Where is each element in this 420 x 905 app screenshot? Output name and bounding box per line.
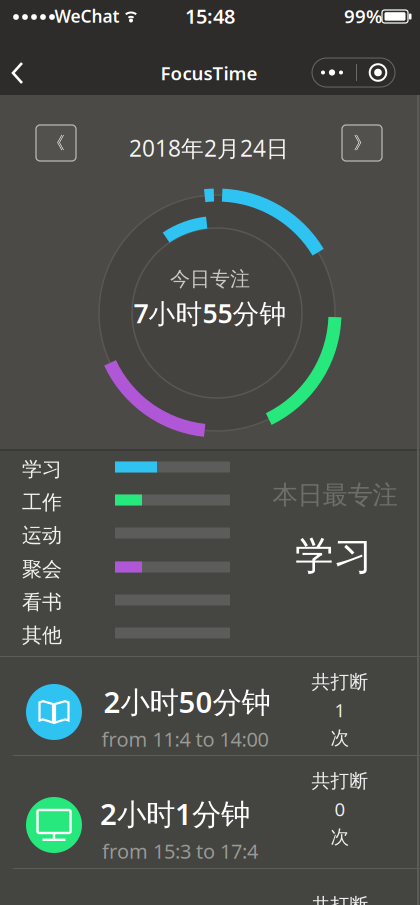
- staticText: 本日最专注: [272, 479, 397, 510]
- staticText: WeChat: [54, 4, 119, 27]
- staticText: 今日专注: [170, 267, 250, 291]
- staticText: 1: [334, 698, 345, 722]
- staticText: 聚会: [22, 557, 62, 582]
- staticText: 0: [334, 797, 345, 821]
- button[interactable]: 2小时50分钟: [0, 657, 420, 755]
- staticText: 99%: [344, 4, 382, 28]
- staticText: 共打断: [311, 769, 368, 792]
- staticText: from 11:4 to 14:00: [101, 726, 268, 752]
- staticText: 学习: [22, 457, 62, 482]
- staticText: 《: [47, 132, 64, 154]
- button[interactable]: More: [312, 58, 356, 87]
- staticText: 次: [330, 825, 349, 848]
- staticText: 学习: [295, 532, 373, 580]
- staticText: 次: [330, 726, 349, 749]
- staticText: 共打断: [311, 670, 368, 693]
- staticText: 共打断: [311, 893, 368, 905]
- button[interactable]: Previous day: [36, 125, 76, 161]
- staticText: 运动: [22, 523, 62, 548]
- staticText: 其他: [22, 623, 62, 648]
- button[interactable]: Next day: [342, 125, 382, 161]
- button[interactable]: 共打断: [0, 869, 420, 905]
- staticText: 15:48: [185, 3, 235, 29]
- staticText: 2018年2月24日: [129, 133, 289, 163]
- staticText: from 15:3 to 17:4: [102, 838, 258, 864]
- staticText: 2小时50分钟: [103, 682, 270, 721]
- button[interactable]: 2小时1分钟: [0, 756, 420, 868]
- staticText: 看书: [22, 590, 62, 615]
- staticText: 7小时55分钟: [133, 295, 286, 331]
- button[interactable]: Back: [0, 54, 40, 92]
- staticText: FocusTime: [160, 61, 257, 85]
- staticText: 工作: [22, 490, 62, 515]
- button[interactable]: Close: [357, 58, 395, 87]
- staticText: 2小时1分钟: [100, 794, 250, 833]
- staticText: 》: [353, 132, 370, 154]
